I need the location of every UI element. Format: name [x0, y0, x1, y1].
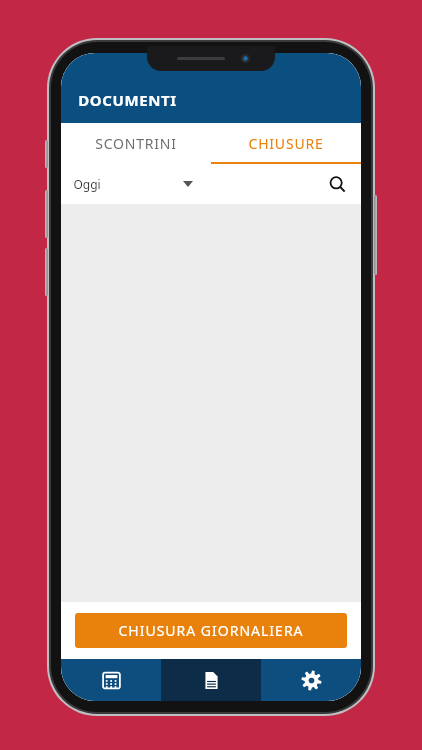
button[interactable]: CHIUSURE: [211, 123, 361, 164]
button[interactable]: SCONTRINI: [61, 123, 211, 164]
button[interactable]: CHIUSURA GIORNALIERA: [75, 613, 347, 648]
button[interactable]: Documents: [161, 659, 261, 701]
staticText: SCONTRINI: [95, 134, 177, 153]
button[interactable]: Oggi: [73, 167, 193, 201]
button[interactable]: Search: [321, 168, 353, 200]
button[interactable]: Calculator: [61, 659, 161, 701]
button[interactable]: Settings: [261, 659, 361, 701]
staticText: DOCUMENTI: [78, 90, 177, 110]
staticText: CHIUSURA GIORNALIERA: [118, 621, 304, 640]
staticText: Oggi: [73, 176, 101, 192]
staticText: CHIUSURE: [248, 134, 324, 153]
